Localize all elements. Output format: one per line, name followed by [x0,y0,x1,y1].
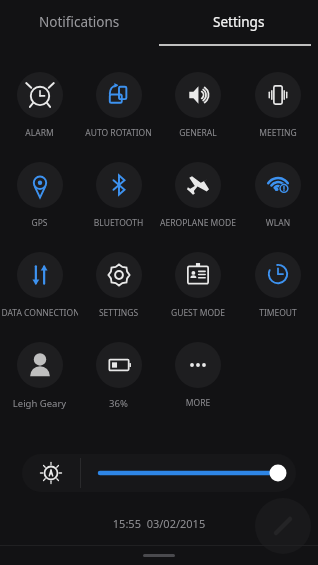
button[interactable]: ALARM [0,60,79,150]
staticText: DATA CONNECTION [1,307,78,319]
staticText: Notifications [39,13,120,31]
staticText: AEROPLANE MODE [159,217,237,229]
staticText: BLUETOOTH [80,217,157,229]
button[interactable]: Leigh Geary [0,330,79,420]
button[interactable]: AEROPLANE MODE [158,150,238,240]
button[interactable]: Auto brightness [22,454,80,492]
staticText: 15:55 03/02/2015 [0,516,318,531]
staticText: WLAN [239,217,317,229]
staticText: SETTINGS [80,307,157,319]
staticText: ALARM [1,127,78,139]
staticText: AUTO ROTATION [80,127,157,139]
staticText: MORE [159,397,237,409]
staticText: TIMEOUT [239,307,317,319]
button[interactable]: Settings [159,0,318,44]
button[interactable]: MORE [158,330,238,420]
button[interactable]: GUEST MODE [158,240,238,330]
staticText: GUEST MODE [159,307,237,319]
button[interactable]: GPS [0,150,79,240]
button[interactable]: Auto brightness [22,454,296,492]
staticText: GENERAL [159,127,237,139]
button[interactable]: GENERAL [158,60,238,150]
staticText: GPS [1,217,78,229]
button[interactable]: TIMEOUT [238,240,318,330]
button[interactable]: AUTO ROTATION [79,60,158,150]
button[interactable]: SETTINGS [79,240,158,330]
button[interactable]: 36% [79,330,158,420]
button[interactable]: MEETING [238,60,318,150]
button[interactable]: Notifications [0,0,159,44]
staticText: MEETING [239,127,317,139]
staticText: Settings [213,13,265,31]
button[interactable]: WLAN [238,150,318,240]
staticText: Leigh Geary [1,397,78,410]
staticText: 36% [80,397,157,410]
button[interactable]: DATA CONNECTION [0,240,79,330]
button[interactable]: BLUETOOTH [79,150,158,240]
